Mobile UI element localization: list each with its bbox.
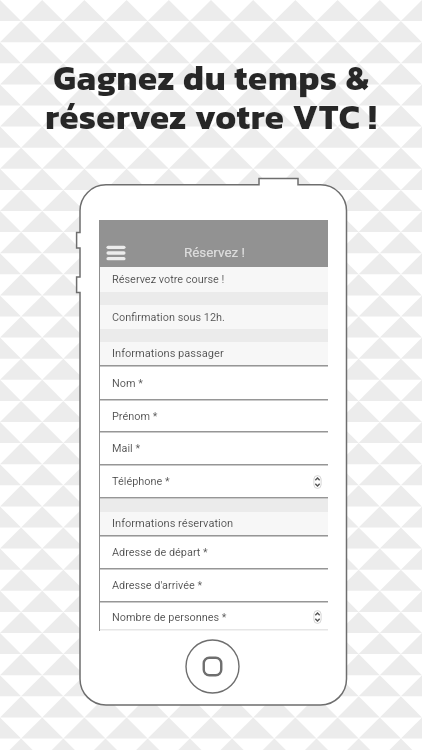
staticText: Adresse d'arrivée * — [112, 579, 203, 592]
staticText: Adresse de départ * — [112, 546, 208, 559]
staticText: Informations passager — [112, 347, 224, 360]
button[interactable]: Nombre de personnes * — [99, 603, 328, 631]
staticText: Mail * — [112, 442, 141, 455]
staticText: Téléphone * — [112, 475, 170, 488]
button[interactable]: Mail * — [99, 433, 328, 466]
staticText: Prénom * — [112, 410, 158, 423]
button[interactable]: Téléphone * — [99, 466, 328, 499]
staticText: Nom * — [112, 377, 143, 390]
staticText: Confirmation sous 12h. — [112, 311, 225, 324]
button[interactable]: Menu — [105, 240, 127, 266]
staticText: Nombre de personnes * — [112, 611, 227, 624]
button[interactable]: Informations passager — [99, 342, 328, 367]
button[interactable]: Adresse de départ * — [99, 537, 328, 570]
button[interactable]: Réservez votre course ! — [99, 267, 328, 292]
button[interactable]: Informations réservation — [99, 512, 328, 537]
staticText: Informations réservation — [112, 517, 234, 530]
button[interactable]: Prénom * — [99, 401, 328, 433]
button[interactable]: Confirmation sous 12h. — [99, 305, 328, 329]
staticText: Réservez ! — [184, 245, 245, 261]
button[interactable]: Adresse d'arrivée * — [99, 570, 328, 603]
staticText: Réservez votre course ! — [112, 273, 225, 286]
staticText: Gagnez du temps & réservez votre VTC ! — [45, 52, 378, 143]
button[interactable]: Nom * — [99, 367, 328, 401]
